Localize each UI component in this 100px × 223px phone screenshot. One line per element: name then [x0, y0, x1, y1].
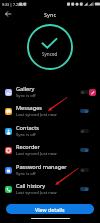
staticText: Recorder: [16, 143, 40, 151]
staticText: Call history: [16, 182, 46, 190]
button[interactable]: Messages: [0, 101, 100, 121]
staticText: Sync is off: [16, 171, 36, 177]
button[interactable]: Password manager: [0, 160, 100, 180]
button[interactable]: Contacts: [0, 121, 100, 141]
staticText: Last synced Just now: [16, 190, 57, 196]
staticText: Gallery: [16, 85, 35, 93]
button[interactable]: Edit: [89, 89, 96, 96]
staticText: View details: [35, 206, 65, 213]
staticText: Sync is off: [16, 132, 36, 138]
button[interactable]: Toggle Messages: [80, 109, 89, 113]
button[interactable]: Toggle Contacts: [80, 129, 89, 133]
button[interactable]: Back: [2, 8, 14, 20]
staticText: Last synced Just now: [16, 112, 57, 118]
button[interactable]: Gallery: [0, 82, 100, 102]
button[interactable]: Toggle Recorder: [80, 148, 89, 152]
button[interactable]: Toggle Gallery: [80, 90, 89, 94]
button[interactable]: Call history: [0, 179, 100, 199]
button[interactable]: Toggle Call history: [80, 187, 89, 191]
staticText: Password manager: [16, 163, 67, 171]
staticText: Contacts: [16, 124, 39, 132]
staticText: Messages: [16, 104, 42, 112]
button[interactable]: View details: [6, 204, 94, 214]
staticText: Sync is off: [16, 93, 36, 99]
staticText: Synced: [42, 51, 58, 57]
button[interactable]: Recorder: [0, 140, 100, 160]
staticText: Sync: [44, 11, 57, 19]
button[interactable]: Toggle Password manager: [80, 168, 89, 172]
staticText: 9:33 | 7.2KB/s: [2, 2, 26, 7]
staticText: Last synced Just now: [16, 151, 57, 157]
